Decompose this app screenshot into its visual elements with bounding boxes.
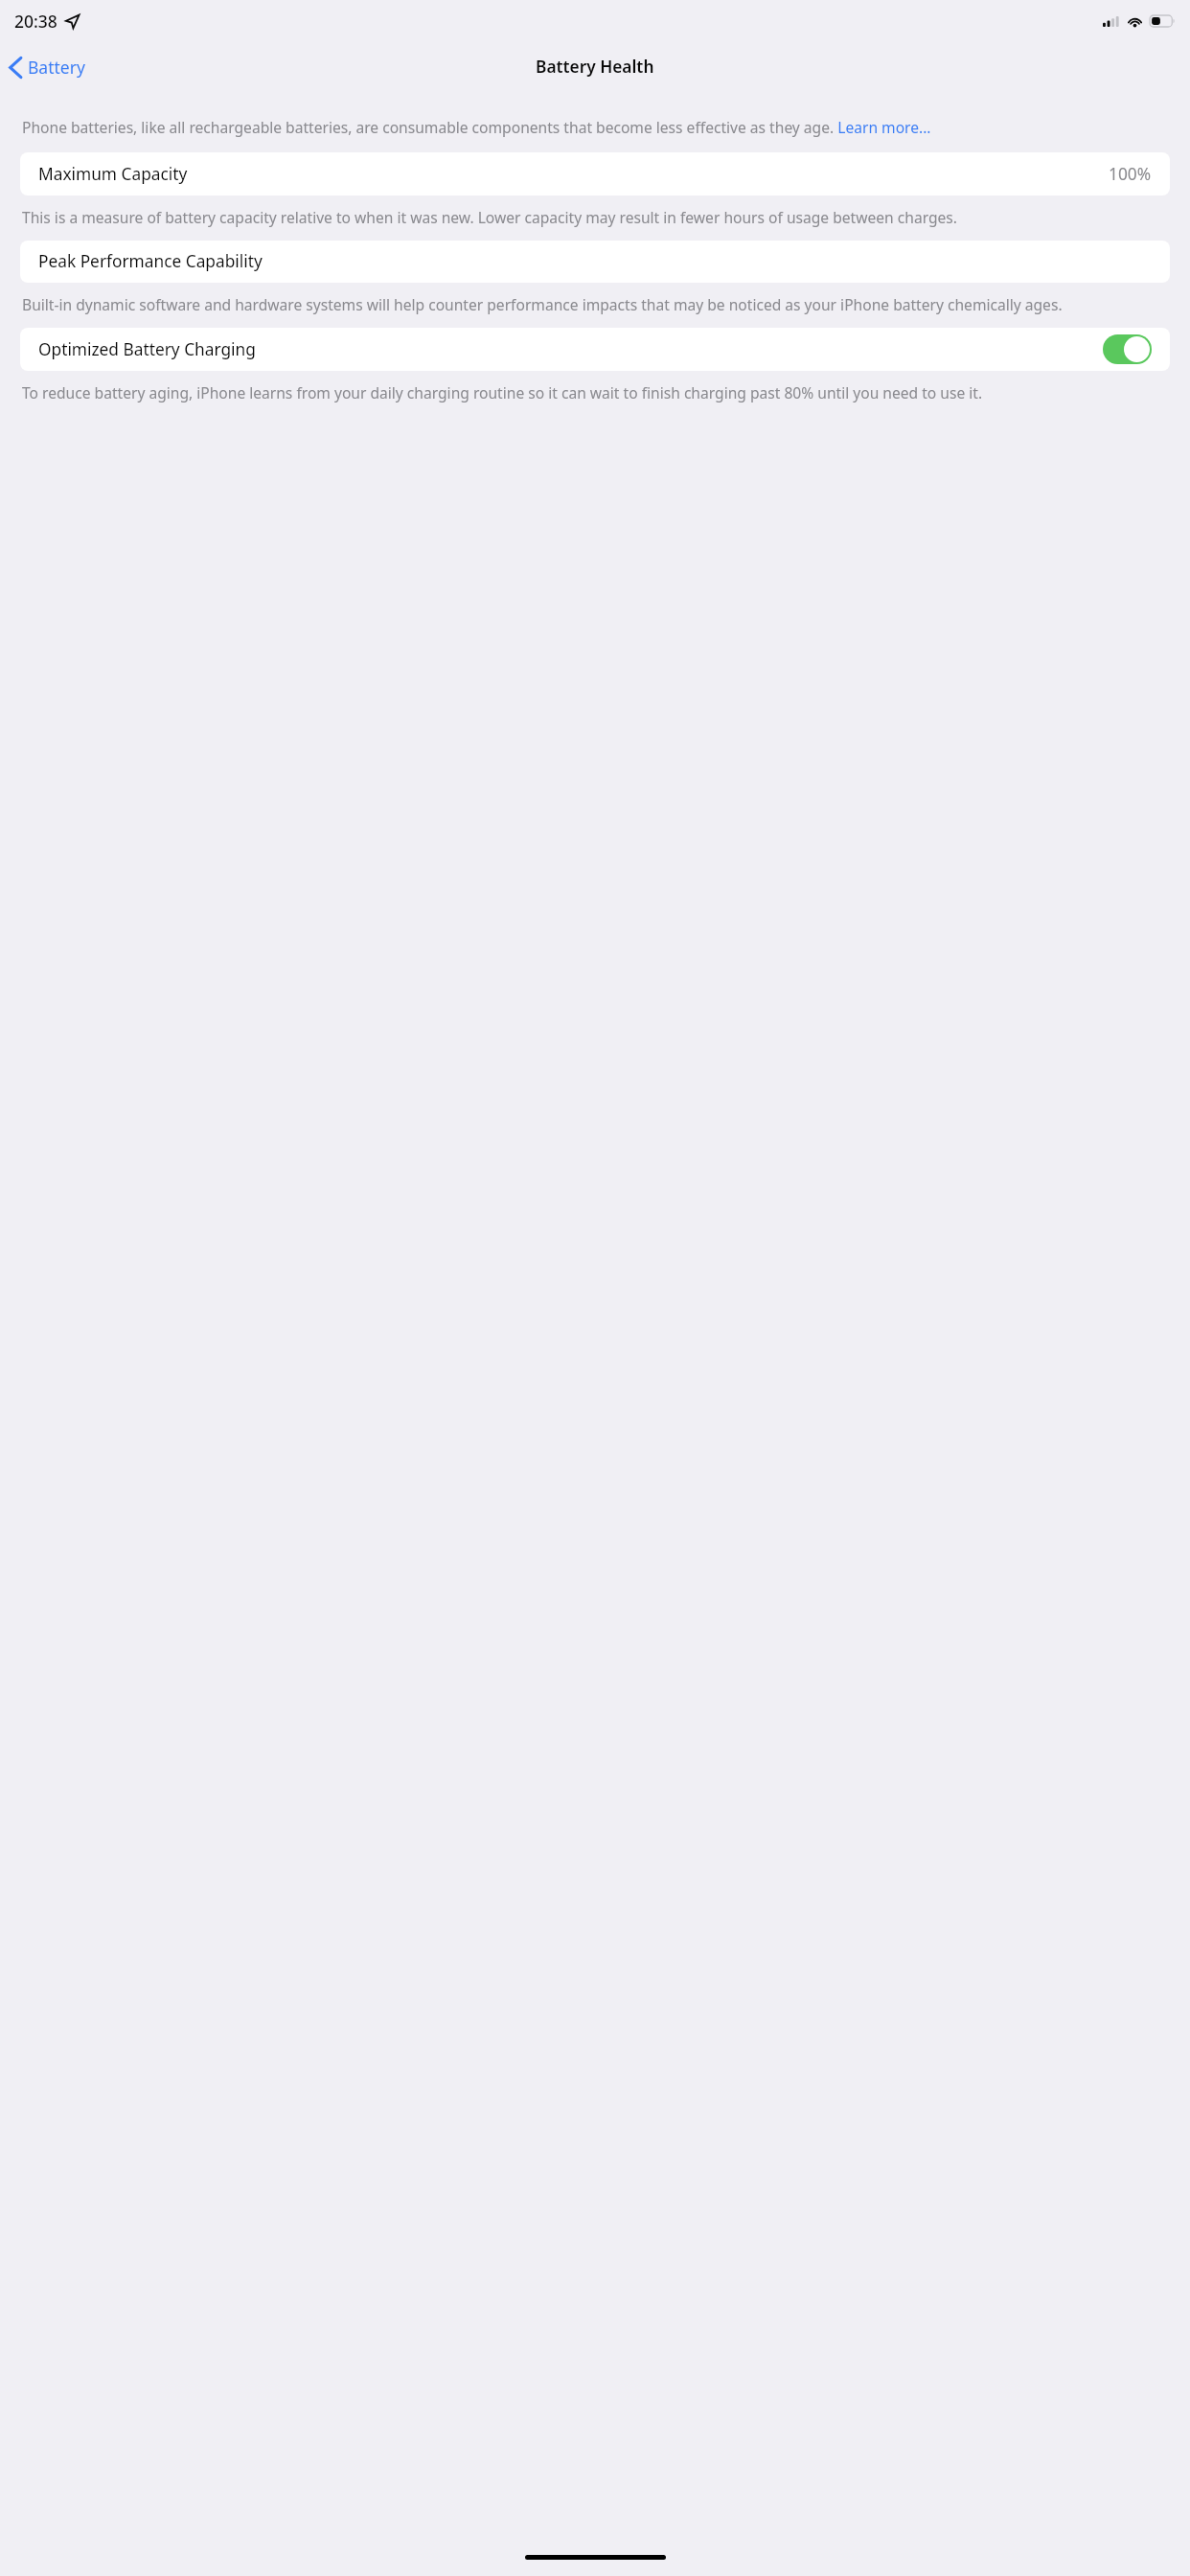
staticText: Built-in dynamic software and hardware s… xyxy=(22,294,1168,314)
staticText: Battery xyxy=(28,56,85,79)
button[interactable]: Maximum Capacity xyxy=(20,152,1170,195)
other: Back xyxy=(9,57,22,79)
staticText: 100% xyxy=(1109,163,1152,186)
button[interactable]: Optimized Battery Charging xyxy=(20,328,1170,371)
staticText: Maximum Capacity xyxy=(38,163,188,186)
staticText: 20:38 xyxy=(14,10,57,33)
button[interactable]: Peak Performance Capability xyxy=(20,241,1170,283)
button[interactable]: Optimized Battery Charging toggle, on xyxy=(1103,334,1152,364)
staticText: Peak Performance Capability xyxy=(38,250,263,273)
staticText: Optimized Battery Charging xyxy=(38,338,256,361)
staticText: Battery Health xyxy=(536,56,654,79)
staticText: Phone batteries, like all rechargeable b… xyxy=(22,117,1168,137)
staticText: To reduce battery aging, iPhone learns f… xyxy=(22,382,1168,402)
staticText: This is a measure of battery capacity re… xyxy=(22,207,1168,227)
button[interactable]: Back xyxy=(0,50,95,84)
